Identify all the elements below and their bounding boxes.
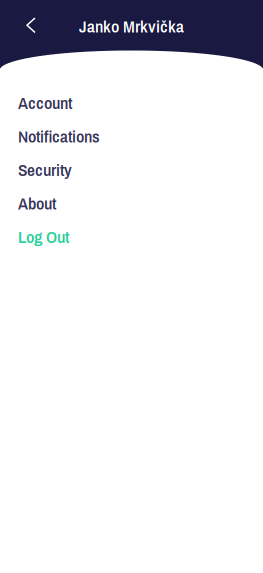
button[interactable]: Account	[0, 86, 263, 119]
staticText: Log Out	[18, 225, 69, 248]
staticText: Notifications	[18, 125, 100, 148]
button[interactable]: About	[0, 186, 263, 220]
button[interactable]: Security	[0, 153, 263, 186]
button[interactable]: Back	[0, 0, 46, 46]
staticText: Account	[18, 91, 72, 114]
staticText: Security	[18, 158, 72, 181]
button[interactable]: Log Out	[0, 220, 263, 253]
button[interactable]: Notifications	[0, 119, 263, 153]
staticText: Janko Mrkvička	[79, 14, 184, 38]
staticText: About	[18, 192, 56, 215]
